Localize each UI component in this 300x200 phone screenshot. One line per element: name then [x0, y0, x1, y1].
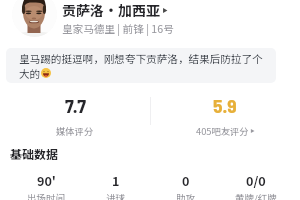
staticText: 1	[112, 171, 120, 189]
staticText: 黄牌/红牌	[235, 191, 277, 200]
staticText: 皇家马德里 | 前锋 | 16号	[62, 21, 174, 36]
button[interactable]: 7.7	[0, 93, 150, 137]
staticText: 7.7	[65, 93, 86, 116]
button[interactable]: 5.9	[150, 93, 300, 137]
button[interactable]: 90'	[12, 171, 81, 200]
button[interactable]: 0	[151, 171, 221, 200]
staticText: 90'	[37, 171, 56, 189]
staticText: 基础数据	[10, 145, 59, 162]
staticText: 皇马踢的挺逗啊，刚想夸下贡萨洛，结果后防拉了个大的	[19, 51, 263, 81]
staticText: 5.9	[213, 93, 237, 116]
staticText: 贡萨洛·加西亚	[62, 0, 160, 20]
staticText: 0	[182, 171, 190, 189]
staticText: 0/0	[246, 171, 266, 189]
button[interactable]: Player photo	[12, 0, 57, 37]
button[interactable]: 贡萨洛·加西亚	[62, 0, 168, 20]
staticText: 助攻	[176, 191, 196, 200]
button[interactable]: 1	[81, 171, 151, 200]
staticText: 405吧友评分	[196, 124, 249, 137]
button[interactable]: 皇马踢的挺逗啊，刚想夸下贡萨洛，结果后防拉了个大的	[6, 48, 276, 83]
button[interactable]: 0/0	[221, 171, 291, 200]
staticText: 进球	[106, 191, 126, 200]
staticText: 出场时间	[27, 191, 66, 200]
staticText: 媒体评分	[56, 124, 94, 137]
